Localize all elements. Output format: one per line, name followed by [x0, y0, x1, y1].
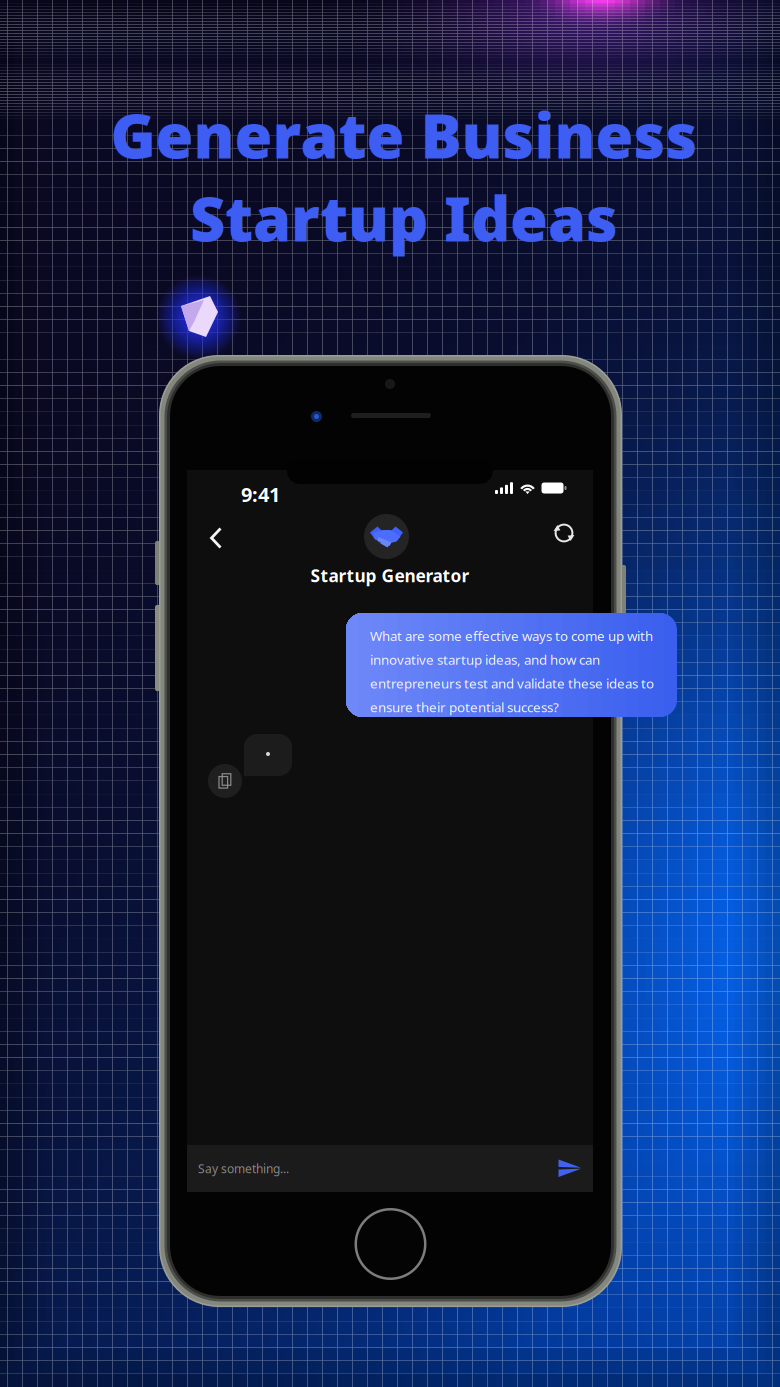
staticText: What are some effective ways to come up … [370, 627, 653, 645]
button[interactable]: Say something... [187, 1145, 593, 1192]
button[interactable]: Copy [207, 763, 243, 799]
button[interactable]: Regenerate [540, 509, 588, 557]
button[interactable]: Home [350, 1204, 430, 1284]
staticText: Startup Ideas [190, 177, 618, 258]
button[interactable]: What are some effective ways to come up … [346, 613, 677, 717]
staticText: innovative startup ideas, and how can [370, 651, 600, 668]
staticText: ensure their potential success? [370, 698, 559, 716]
button[interactable]: Back [195, 513, 237, 563]
staticText: Say something... [198, 1160, 289, 1176]
staticText: entrepreneurs test and validate these id… [370, 674, 654, 692]
staticText: Startup Generator [310, 564, 469, 587]
staticText: 9:41 [241, 481, 280, 508]
staticText: Generate Business [110, 94, 697, 175]
